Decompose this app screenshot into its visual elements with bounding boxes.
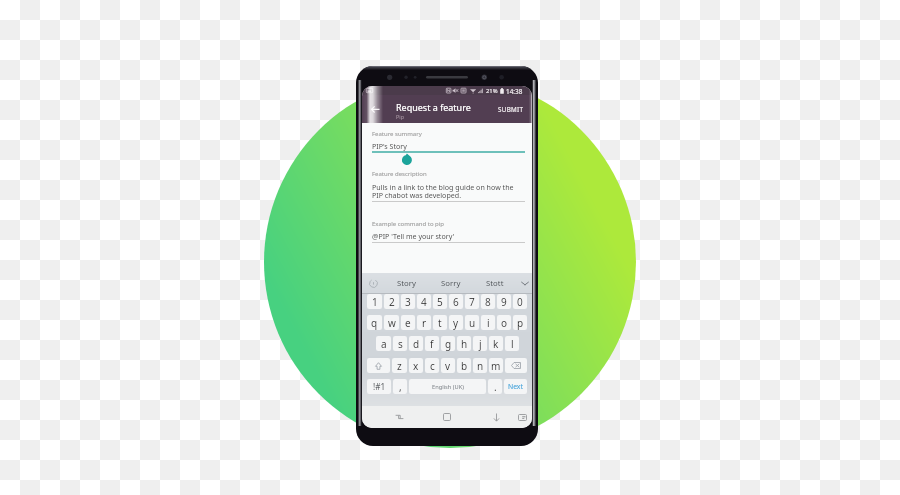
- button[interactable]: Recents: [389, 406, 409, 428]
- staticText: 21%: [486, 87, 498, 95]
- button[interactable]: 0: [513, 294, 527, 309]
- button[interactable]: y: [449, 315, 463, 330]
- button[interactable]: a: [376, 336, 391, 351]
- button[interactable]: b: [457, 358, 471, 373]
- staticText: @PIP 'Tell me your story': [372, 231, 455, 241]
- staticText: ,: [399, 380, 402, 394]
- staticText: PIP's Story: [372, 141, 407, 151]
- button[interactable]: p: [513, 315, 527, 330]
- staticText: y: [453, 316, 459, 330]
- button[interactable]: c: [425, 358, 439, 373]
- staticText: Request a feature: [396, 101, 471, 113]
- button[interactable]: 4: [417, 294, 431, 309]
- staticText: h: [461, 337, 468, 351]
- staticText: z: [397, 359, 402, 373]
- button[interactable]: 6: [449, 294, 463, 309]
- staticText: 4: [421, 295, 427, 309]
- button[interactable]: Hide keyboard: [486, 406, 506, 428]
- button[interactable]: Keyboard settings: [512, 406, 532, 428]
- staticText: Sorry: [441, 278, 461, 289]
- staticText: 0: [517, 295, 523, 309]
- staticText: 14:38: [506, 87, 523, 96]
- staticText: 5: [437, 295, 443, 309]
- staticText: Feature summary: [372, 130, 422, 138]
- button[interactable]: Expand suggestions: [517, 273, 532, 293]
- button[interactable]: z: [392, 358, 407, 373]
- button[interactable]: Stott: [473, 273, 517, 293]
- staticText: g: [445, 337, 452, 351]
- staticText: Pulls in a link to the blog guide on how…: [372, 182, 525, 200]
- staticText: 8: [485, 295, 491, 309]
- button[interactable]: f: [425, 336, 439, 351]
- staticText: s: [398, 337, 403, 351]
- button[interactable]: x: [409, 358, 423, 373]
- button[interactable]: Story: [384, 273, 429, 293]
- button[interactable]: 7: [465, 294, 479, 309]
- button[interactable]: SUBMIT: [494, 99, 528, 120]
- button[interactable]: j: [473, 336, 487, 351]
- button[interactable]: l: [505, 336, 519, 351]
- button[interactable]: e: [401, 315, 415, 330]
- button[interactable]: v: [441, 358, 455, 373]
- staticText: .: [494, 380, 497, 394]
- staticText: w: [388, 316, 396, 330]
- button[interactable]: 8: [481, 294, 495, 309]
- staticText: k: [493, 337, 499, 351]
- button[interactable]: Back: [365, 99, 385, 119]
- staticText: r: [422, 316, 427, 330]
- staticText: English (UK): [432, 383, 464, 391]
- button[interactable]: 9: [497, 294, 511, 309]
- button[interactable]: Next: [504, 379, 527, 394]
- staticText: SUBMIT: [498, 105, 524, 114]
- button[interactable]: o: [497, 315, 511, 330]
- staticText: 6: [453, 295, 459, 309]
- staticText: e: [405, 316, 411, 330]
- staticText: q: [371, 316, 378, 330]
- button[interactable]: Backspace: [505, 358, 527, 373]
- staticText: Example command to pip: [372, 220, 445, 228]
- staticText: n: [477, 359, 484, 373]
- staticText: 3: [405, 295, 411, 309]
- button[interactable]: s: [393, 336, 407, 351]
- button[interactable]: .: [488, 379, 502, 394]
- button[interactable]: 5: [433, 294, 447, 309]
- button[interactable]: 2: [384, 294, 399, 309]
- button[interactable]: English (UK): [409, 379, 486, 394]
- staticText: Story: [397, 278, 417, 289]
- staticText: Stott: [486, 278, 504, 289]
- button[interactable]: h: [457, 336, 471, 351]
- button[interactable]: g: [441, 336, 455, 351]
- button[interactable]: Shift: [367, 358, 390, 373]
- button[interactable]: ,: [393, 379, 407, 394]
- staticText: Feature description: [372, 170, 427, 178]
- staticText: b: [461, 359, 468, 373]
- staticText: c: [430, 359, 435, 373]
- button[interactable]: Home: [437, 406, 457, 428]
- staticText: Next: [508, 382, 523, 391]
- staticText: d: [413, 337, 420, 351]
- button[interactable]: Sorry: [429, 273, 473, 293]
- button[interactable]: !#1: [367, 379, 391, 394]
- button[interactable]: t: [433, 315, 447, 330]
- staticText: a: [381, 337, 387, 351]
- staticText: i: [487, 316, 490, 330]
- staticText: j: [479, 337, 482, 351]
- staticText: m: [491, 359, 501, 373]
- button[interactable]: m: [489, 358, 503, 373]
- button[interactable]: u: [465, 315, 479, 330]
- staticText: x: [413, 359, 419, 373]
- button[interactable]: w: [384, 315, 399, 330]
- button[interactable]: i: [481, 315, 495, 330]
- button[interactable]: r: [417, 315, 431, 330]
- button[interactable]: d: [409, 336, 423, 351]
- staticText: u: [469, 316, 476, 330]
- button[interactable]: q: [367, 315, 382, 330]
- button[interactable]: k: [489, 336, 503, 351]
- staticText: !#1: [373, 381, 386, 392]
- staticText: 2: [389, 295, 395, 309]
- button[interactable]: n: [473, 358, 487, 373]
- staticText: f: [430, 337, 434, 351]
- button[interactable]: Voice input: [362, 273, 384, 293]
- button[interactable]: 3: [401, 294, 415, 309]
- button[interactable]: 1: [367, 294, 382, 309]
